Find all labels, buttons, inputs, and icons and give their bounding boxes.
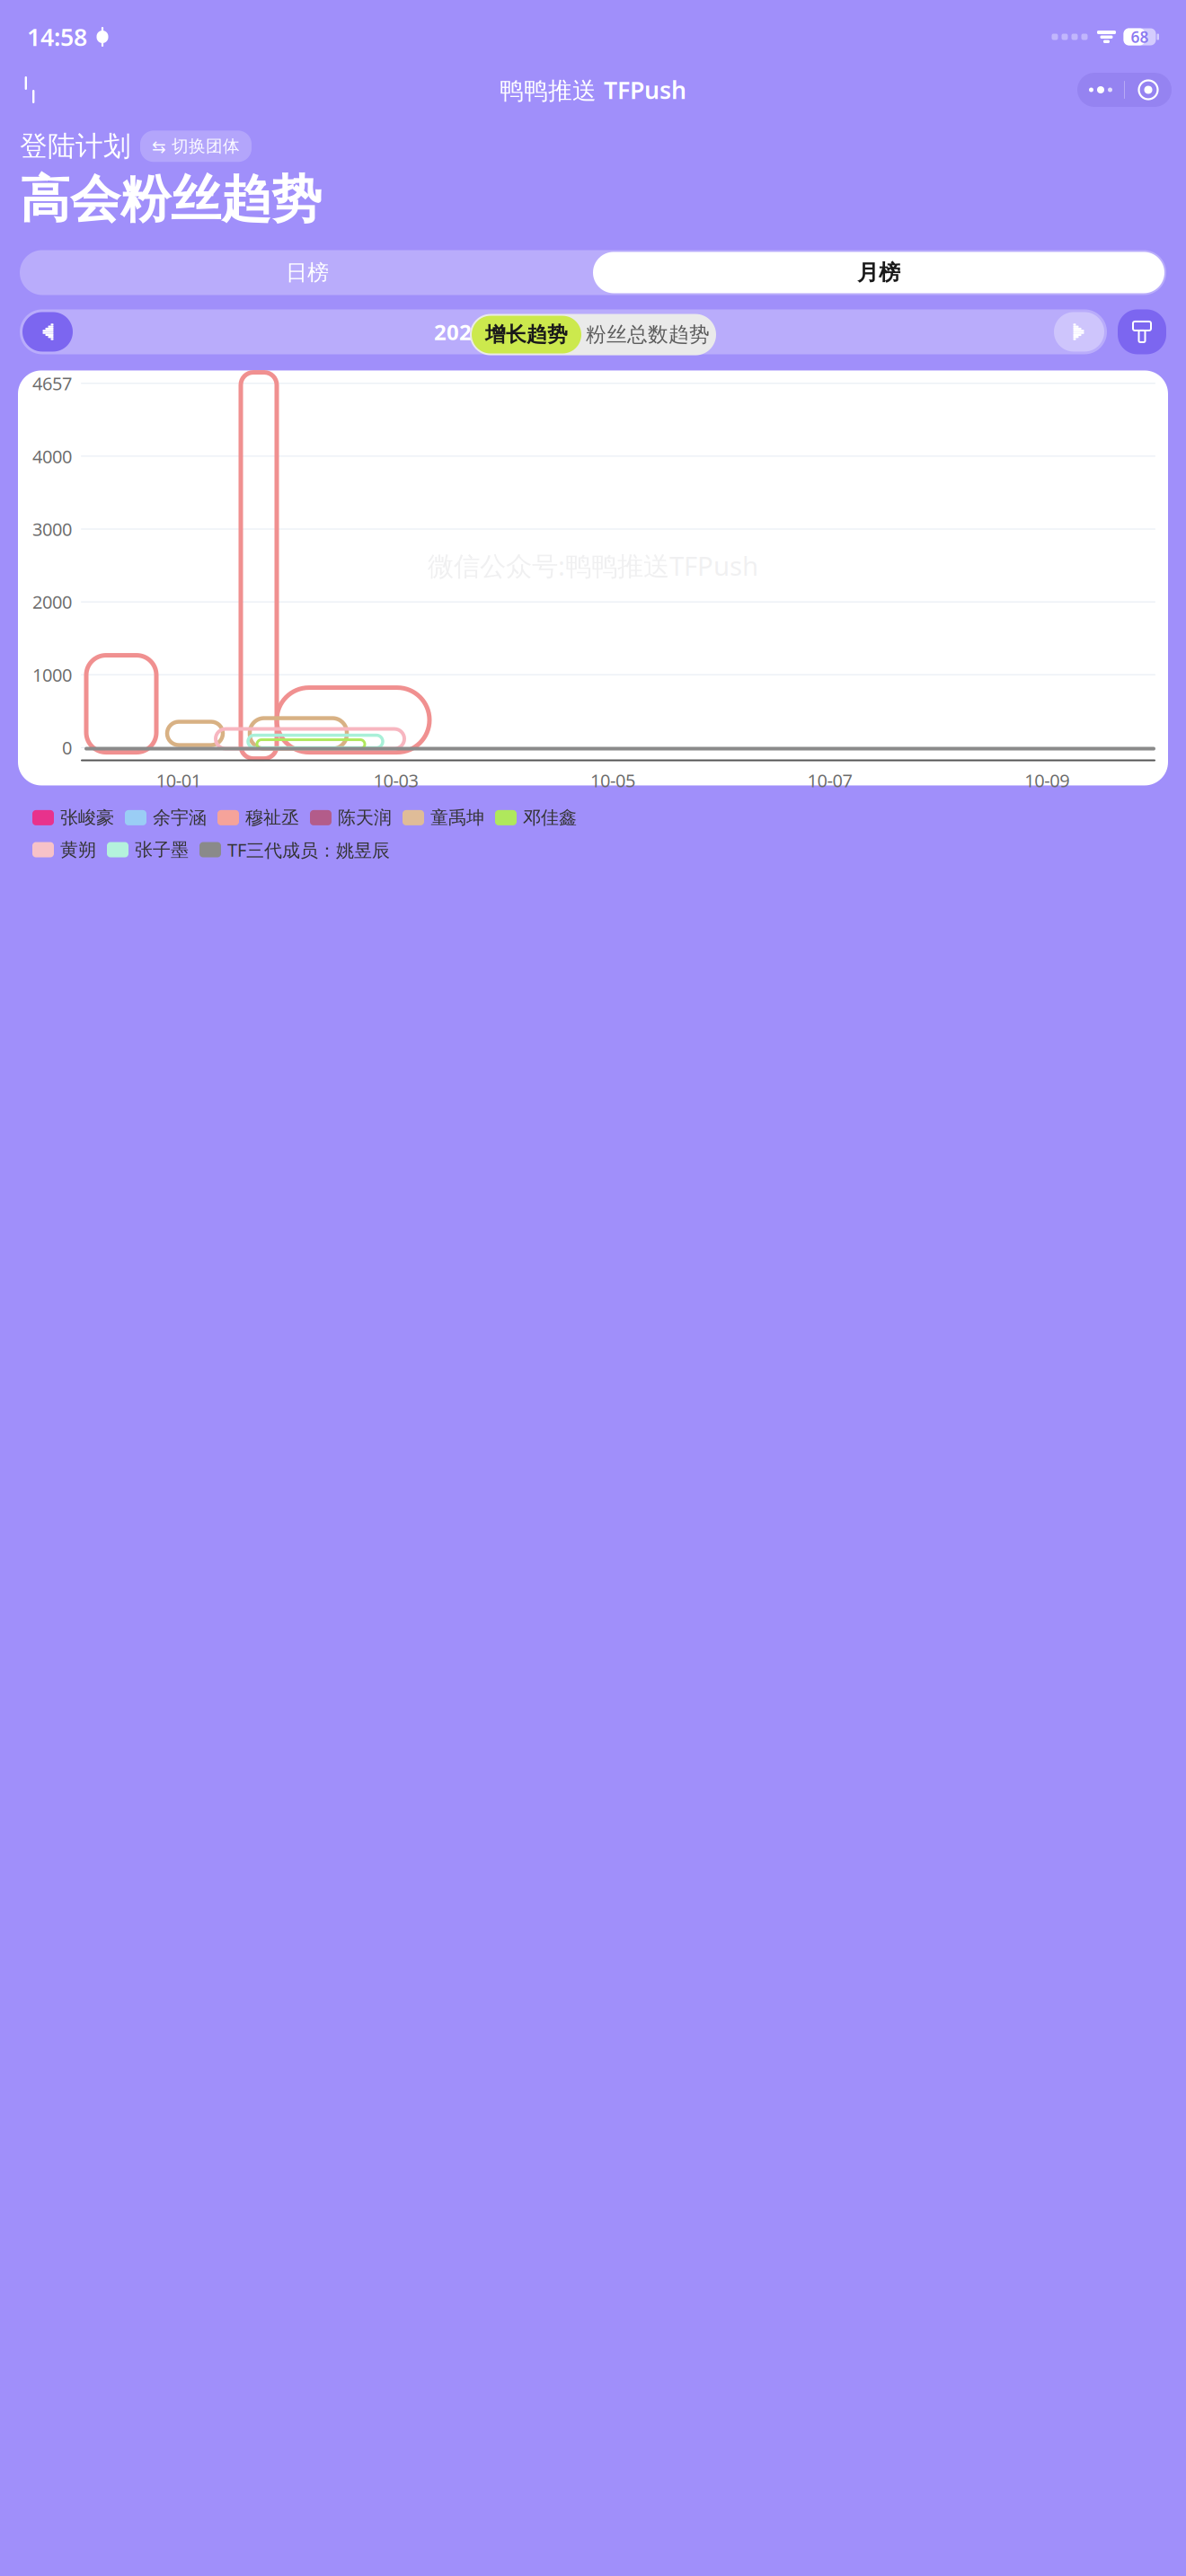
staticText: 微信公众号:鸭鸭推送TFPush — [428, 548, 758, 583]
button[interactable]: 月榜 — [593, 252, 1164, 293]
staticText: 登陆计划 — [20, 129, 131, 163]
staticText: 增长趋势 — [485, 322, 568, 347]
staticText: 鸭鸭推送 TFPush — [500, 74, 686, 106]
staticText: 1000 — [32, 663, 72, 687]
staticText: 粉丝总数趋势 — [586, 322, 710, 347]
staticText: 陈天润 — [338, 807, 392, 829]
staticText: 10-07 — [807, 768, 852, 792]
staticText: 14:58 — [27, 21, 87, 53]
staticText: 10-05 — [590, 768, 635, 792]
staticText: 张峻豪 — [60, 807, 114, 829]
staticText: 10-09 — [1024, 768, 1069, 792]
staticText: 3000 — [32, 517, 72, 541]
button[interactable]: Back — [14, 70, 45, 110]
staticText: 余宇涵 — [153, 807, 207, 829]
staticText: 10-03 — [373, 768, 418, 792]
staticText: 日榜 — [286, 259, 329, 286]
staticText: 高会粉丝趋势 — [20, 169, 322, 230]
staticText: 10-01 — [156, 768, 201, 792]
staticText: 月榜 — [857, 259, 900, 286]
staticText: 4000 — [32, 444, 72, 468]
staticText: 68 — [1131, 26, 1149, 47]
staticText: 张子墨 — [135, 839, 189, 861]
staticText: 童禹坤 — [430, 807, 484, 829]
staticText: 0 — [62, 736, 72, 760]
staticText: ⇆ 切换团体 — [152, 136, 240, 157]
button[interactable]: Next month — [1054, 312, 1104, 352]
button[interactable]: 增长趋势 — [472, 316, 581, 354]
button[interactable]: 日榜 — [22, 250, 593, 295]
staticText: 2025年10月(10.01~10.10) — [434, 318, 693, 346]
staticText: 邓佳鑫 — [523, 807, 577, 829]
button[interactable]: Filter — [1118, 309, 1166, 354]
button[interactable]: More options — [1077, 73, 1172, 107]
button[interactable]: ⇆ 切换团体 — [140, 131, 252, 162]
staticText: 2000 — [32, 590, 72, 614]
button[interactable]: 粉丝总数趋势 — [581, 316, 714, 354]
staticText: 黄朔 — [60, 839, 96, 861]
staticText: TF三代成员：姚昱辰 — [227, 838, 390, 862]
staticText: 穆祉丞 — [245, 807, 299, 829]
staticText: 4657 — [32, 371, 72, 395]
button[interactable]: Previous month — [22, 312, 73, 352]
